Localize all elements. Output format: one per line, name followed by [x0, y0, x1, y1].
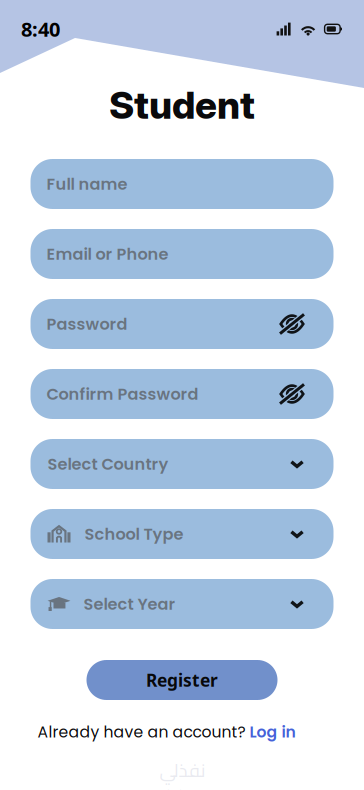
- staticText: School Type: [84, 523, 183, 545]
- button[interactable]: Password: [30, 299, 333, 349]
- staticText: Email or Phone: [46, 243, 168, 265]
- button[interactable]: Log in: [245, 721, 295, 743]
- staticText: Password: [46, 313, 127, 335]
- staticText: 8:40: [21, 16, 60, 42]
- button[interactable]: School Type: [30, 509, 333, 559]
- staticText: Register: [146, 668, 218, 691]
- staticText: Confirm Password: [46, 383, 198, 405]
- button[interactable]: Full name: [30, 159, 333, 209]
- staticText: Student: [109, 82, 255, 128]
- button[interactable]: Select Year: [30, 579, 333, 629]
- staticText: Select Country: [47, 453, 168, 475]
- staticText: نفذلي: [159, 753, 205, 788]
- button[interactable]: Register: [86, 660, 277, 700]
- button[interactable]: Confirm Password: [30, 369, 333, 419]
- button[interactable]: Select Country: [30, 439, 333, 489]
- staticText: Log in: [245, 721, 295, 743]
- staticText: Select Year: [83, 593, 175, 615]
- button[interactable]: Email or Phone: [30, 229, 333, 279]
- staticText: Full name: [46, 173, 127, 195]
- staticText: Already have an account?: [37, 721, 245, 743]
